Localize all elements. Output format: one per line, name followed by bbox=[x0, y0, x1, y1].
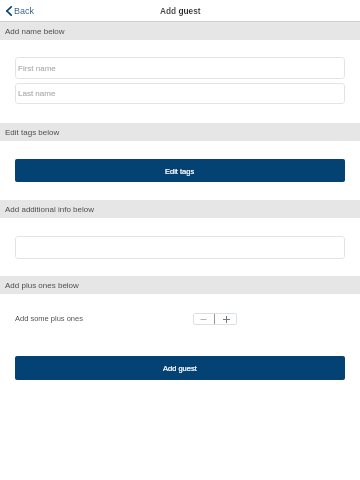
button[interactable]: Decrease plus ones bbox=[193, 313, 214, 325]
staticText: Back bbox=[14, 6, 35, 16]
staticText: Add some plus ones bbox=[15, 314, 83, 322]
button[interactable]: Last name bbox=[15, 83, 345, 104]
button[interactable]: Additional info bbox=[15, 236, 345, 259]
staticText: Add guest bbox=[163, 364, 197, 372]
staticText: Add plus ones below bbox=[5, 281, 79, 290]
button[interactable]: Add some plus ones bbox=[0, 306, 360, 332]
staticText: First name bbox=[18, 64, 56, 73]
staticText: Add name below bbox=[5, 27, 65, 36]
button[interactable]: Edit tags bbox=[15, 159, 345, 182]
staticText: Add guest bbox=[160, 6, 201, 15]
button[interactable]: Increase plus ones bbox=[215, 313, 237, 325]
staticText: Edit tags bbox=[165, 167, 195, 175]
button[interactable]: First name bbox=[15, 57, 345, 79]
staticText: Edit tags below bbox=[5, 128, 60, 137]
staticText: Last name bbox=[18, 89, 56, 98]
button[interactable]: Back bbox=[0, 6, 41, 16]
staticText: Add additional info below bbox=[5, 205, 94, 214]
button[interactable]: Add guest bbox=[15, 356, 345, 380]
